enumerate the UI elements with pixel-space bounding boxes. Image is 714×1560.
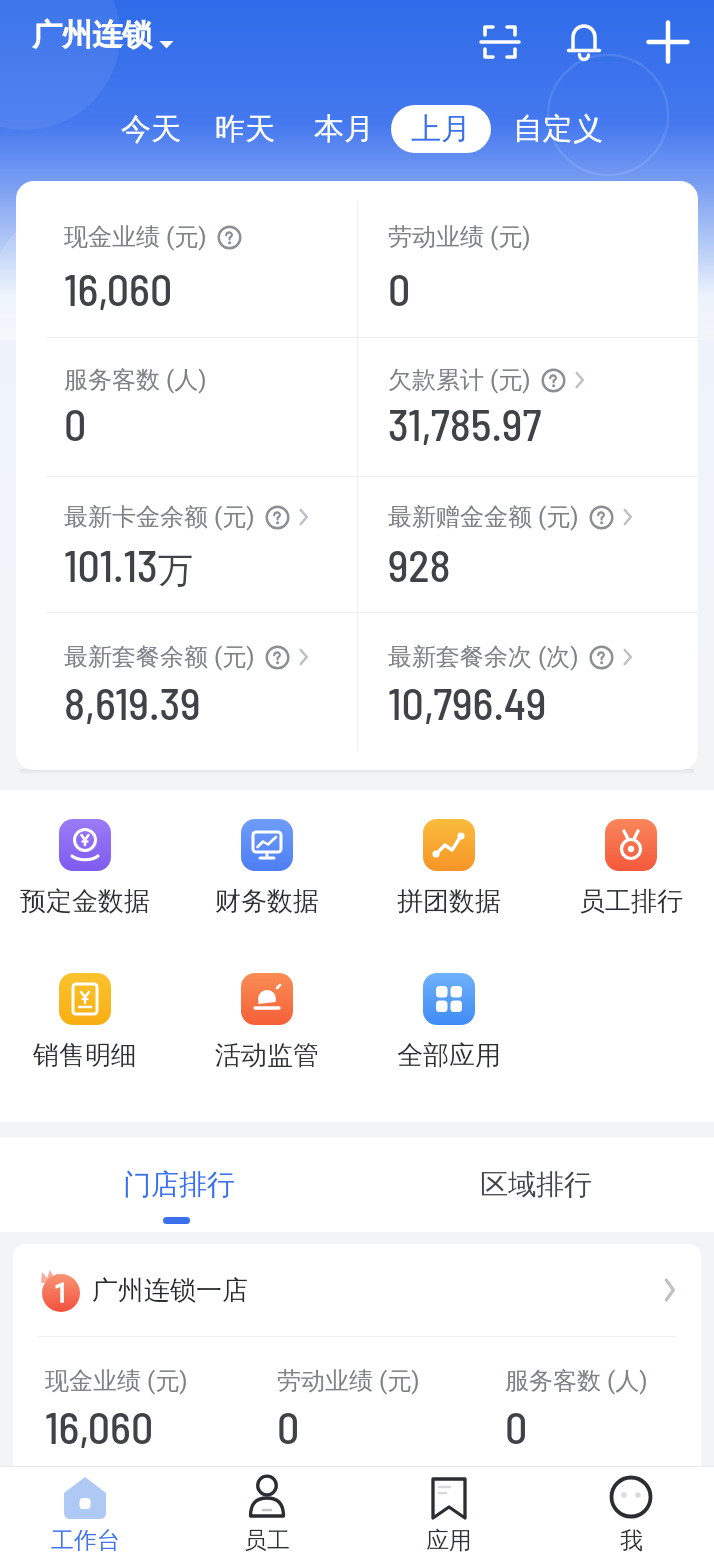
button[interactable]: 最新卡金余额 (元) (64, 502, 309, 592)
staticText: 我 (620, 1526, 643, 1555)
staticText: 区域排行 (480, 1167, 592, 1202)
button[interactable]: 今天 (121, 110, 181, 148)
button[interactable]: 服务客数 (人) (64, 365, 207, 450)
staticText: 拼团数据 (397, 885, 501, 918)
button[interactable]: 应用 (389, 1474, 509, 1555)
button[interactable]: 自定义 (513, 110, 603, 148)
button[interactable] (562, 20, 606, 64)
staticText: 0 (388, 262, 411, 315)
button[interactable]: 广州连锁 (28, 10, 198, 62)
staticText: 工作台 (51, 1526, 120, 1555)
button[interactable]: 欠款累计 (元) (388, 365, 585, 450)
button[interactable]: 1 (13, 1244, 701, 1336)
staticText: 现金业绩 (元) (45, 1366, 188, 1396)
button[interactable]: 工作台 (25, 1474, 145, 1555)
staticText: 10,796.49 (388, 676, 547, 729)
staticText: 0 (505, 1400, 528, 1453)
staticText: 广州连锁 (32, 16, 152, 54)
button[interactable]: 我 (571, 1474, 691, 1555)
staticText: 劳动业绩 (元) (277, 1366, 420, 1396)
staticText: 欠款累计 (元) (388, 365, 531, 395)
button[interactable]: 昨天 (215, 110, 275, 148)
staticText: 101.13万 (64, 538, 193, 592)
staticText: 门店排行 (123, 1167, 235, 1202)
button[interactable]: 最新套餐余次 (次) (388, 642, 633, 729)
button[interactable]: 劳动业绩 (元) (388, 222, 531, 315)
staticText: 员工排行 (579, 885, 683, 918)
staticText: 自定义 (513, 110, 603, 148)
staticText: 员工 (244, 1526, 290, 1555)
button[interactable]: 活动监管 (176, 973, 358, 1072)
button[interactable]: 最新赠金金额 (元) (388, 502, 633, 591)
staticText: 活动监管 (215, 1039, 319, 1072)
staticText: 现金业绩 (元) (64, 222, 207, 252)
staticText: 全部应用 (397, 1039, 501, 1072)
staticText: 最新套餐余次 (次) (388, 642, 579, 672)
button[interactable]: 员工 (207, 1474, 327, 1555)
button[interactable]: 区域排行 (357, 1137, 714, 1232)
staticText: 0 (277, 1400, 300, 1453)
button[interactable]: 本月 (314, 110, 374, 148)
staticText: 1 (54, 1278, 69, 1308)
staticText: 昨天 (215, 110, 275, 148)
staticText: 16,060 (64, 262, 173, 315)
button[interactable]: 预定金数据 (0, 819, 176, 918)
staticText: 上月 (411, 110, 471, 148)
staticText: 广州连锁一店 (92, 1274, 248, 1307)
staticText: 本月 (314, 110, 374, 148)
staticText: 劳动业绩 (元) (388, 222, 531, 252)
button[interactable]: 现金业绩 (元) (64, 222, 242, 315)
staticText: 今天 (121, 110, 181, 148)
staticText: 财务数据 (215, 885, 319, 918)
staticText: 31,785.97 (388, 397, 542, 450)
staticText: 预定金数据 (20, 885, 150, 918)
staticText: 928 (388, 538, 451, 591)
staticText: 最新赠金金额 (元) (388, 502, 579, 532)
staticText: 最新套餐余额 (元) (64, 642, 255, 672)
staticText: 8,619.39 (64, 676, 201, 729)
staticText: 最新卡金余额 (元) (64, 502, 255, 532)
staticText: 服务客数 (人) (64, 365, 207, 395)
staticText: 16,060 (45, 1400, 154, 1453)
button[interactable]: 全部应用 (358, 973, 540, 1072)
button[interactable]: 上月 (391, 105, 491, 153)
button[interactable] (646, 20, 690, 64)
button[interactable] (478, 20, 522, 64)
staticText: 服务客数 (人) (505, 1366, 648, 1396)
button[interactable]: 最新套餐余额 (元) (64, 642, 309, 729)
button[interactable]: 员工排行 (540, 819, 714, 918)
button[interactable]: 门店排行 (0, 1137, 357, 1232)
staticText: 0 (64, 397, 87, 450)
button[interactable]: 拼团数据 (358, 819, 540, 918)
staticText: 应用 (426, 1526, 472, 1555)
staticText: 销售明细 (33, 1039, 137, 1072)
button[interactable]: 财务数据 (176, 819, 358, 918)
button[interactable]: 销售明细 (0, 973, 176, 1072)
